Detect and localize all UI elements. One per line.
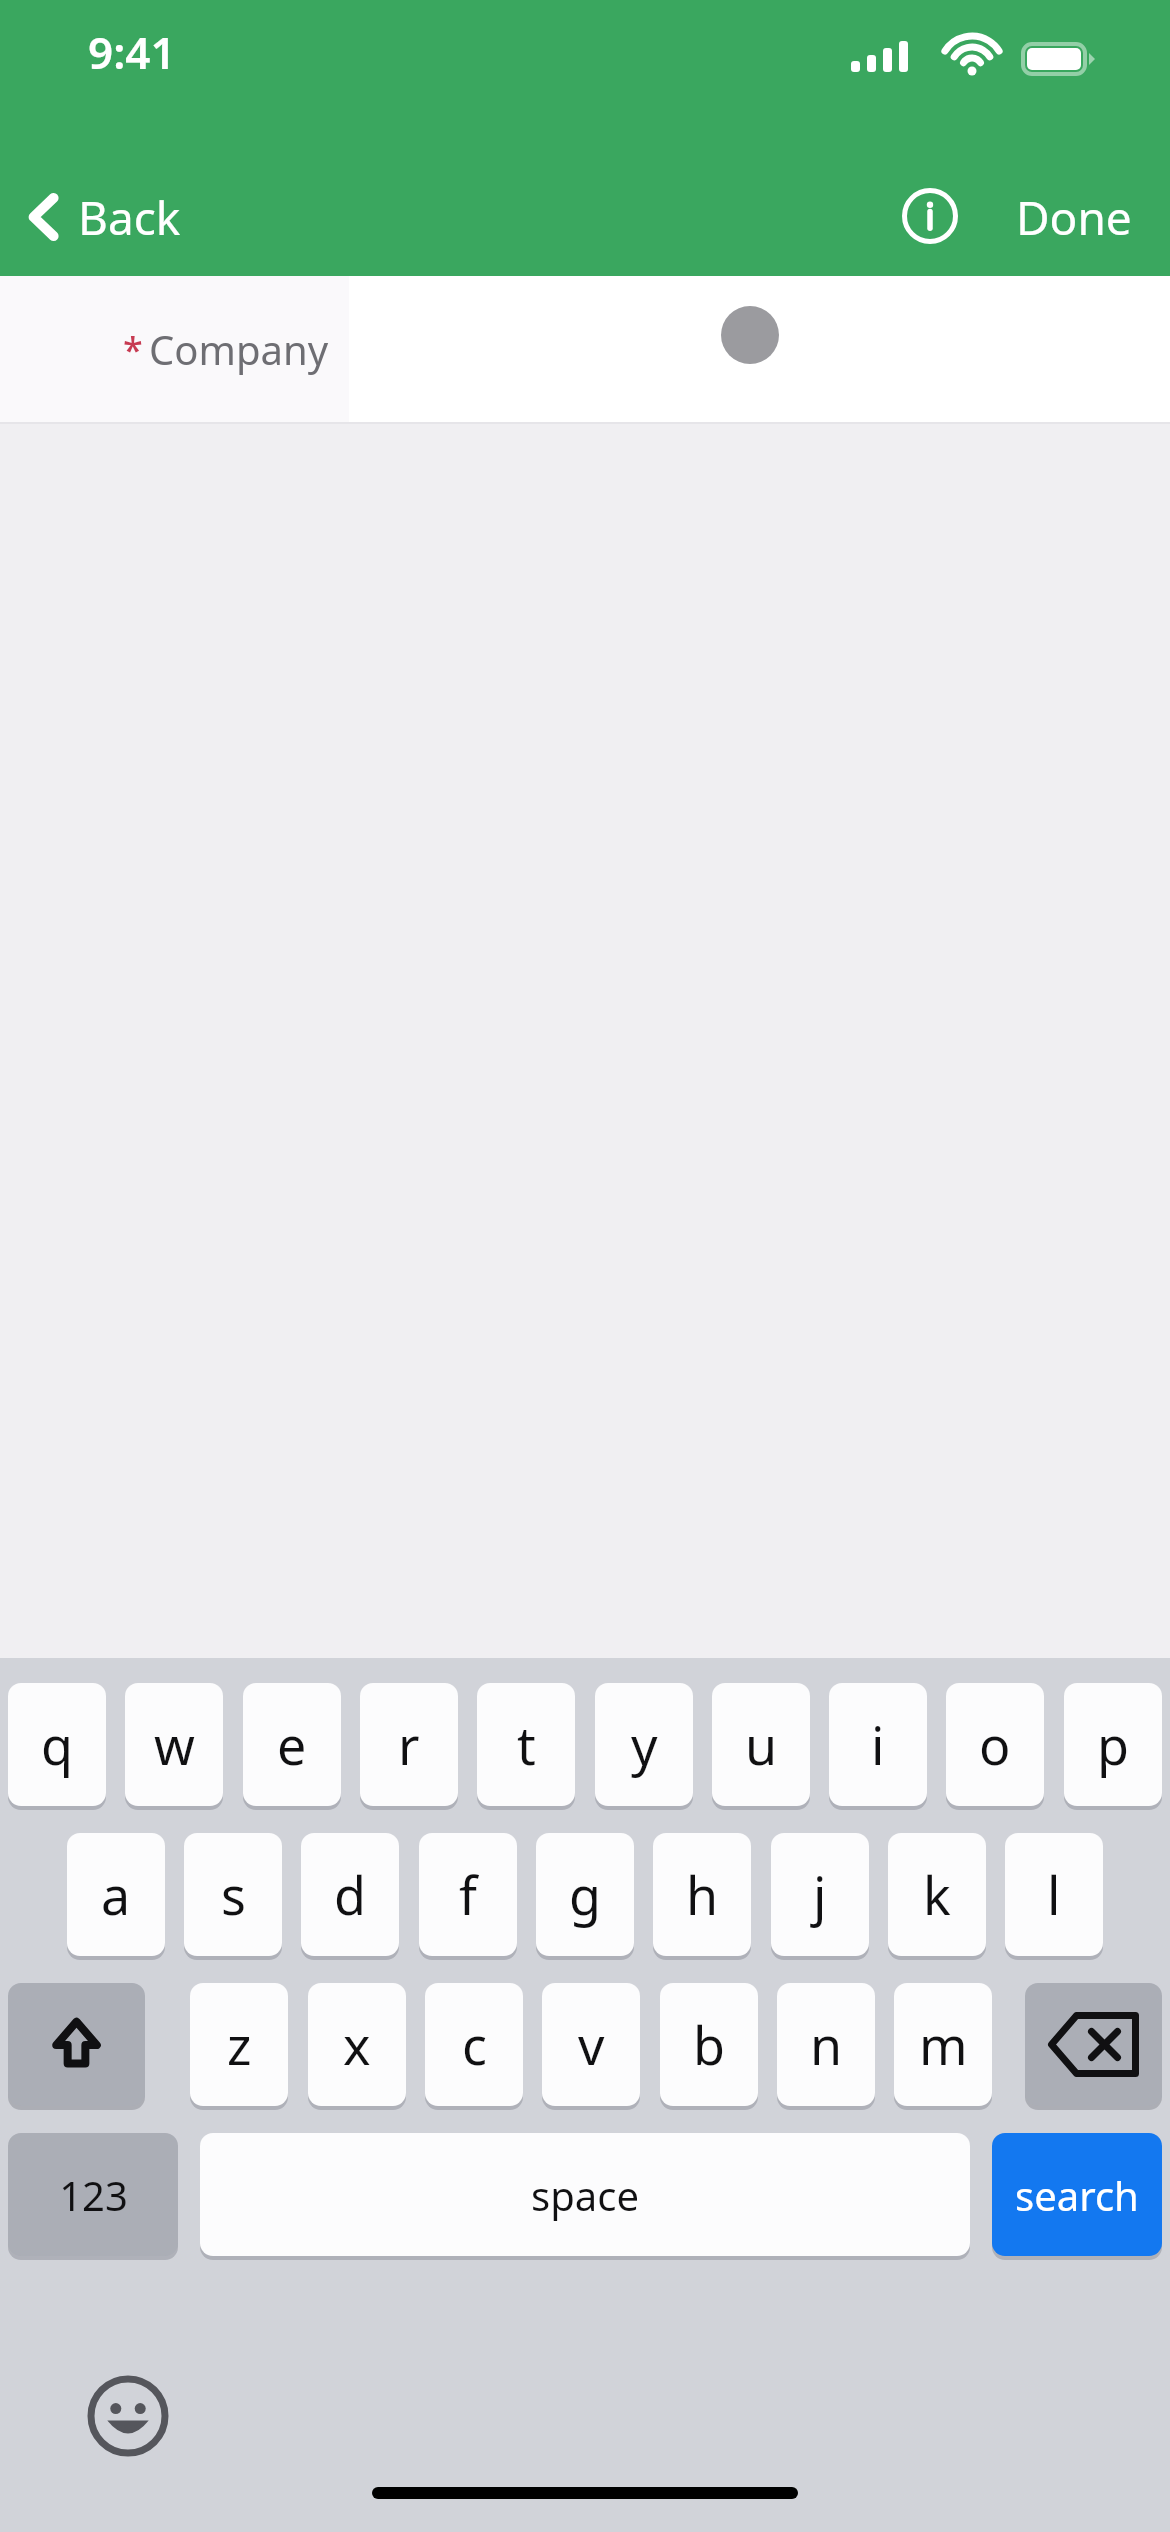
staticText: p xyxy=(1097,1709,1129,1780)
button[interactable]: Backspace xyxy=(1025,1983,1162,2106)
staticText: m xyxy=(919,2009,968,2080)
staticText: o xyxy=(979,1709,1011,1780)
button[interactable]: f xyxy=(419,1833,517,1956)
staticText: Done xyxy=(1016,186,1132,249)
staticText: a xyxy=(101,1859,131,1930)
button[interactable]: m xyxy=(894,1983,992,2106)
staticText: search xyxy=(1015,2168,1139,2222)
staticText: 123 xyxy=(59,2168,128,2222)
staticText: c xyxy=(462,2009,487,2080)
staticText: l xyxy=(1047,1859,1061,1930)
button[interactable]: k xyxy=(888,1833,986,1956)
button[interactable]: a xyxy=(67,1833,165,1956)
staticText: s xyxy=(221,1859,246,1930)
button[interactable]: w xyxy=(125,1683,223,1806)
button[interactable]: Done xyxy=(1000,162,1148,272)
staticText: y xyxy=(631,1709,658,1780)
button[interactable]: y xyxy=(595,1683,693,1806)
staticText: q xyxy=(41,1709,73,1780)
staticText: * xyxy=(123,325,143,374)
button[interactable]: search xyxy=(992,2133,1162,2256)
button[interactable]: u xyxy=(712,1683,810,1806)
button[interactable]: d xyxy=(301,1833,399,1956)
button[interactable]: s xyxy=(184,1833,282,1956)
staticText: x xyxy=(343,2009,371,2080)
button[interactable]: p xyxy=(1064,1683,1162,1806)
staticText: space xyxy=(531,2168,639,2222)
button[interactable]: z xyxy=(190,1983,288,2106)
button[interactable]: Emoji keyboard xyxy=(78,2366,178,2466)
button[interactable]: l xyxy=(1005,1833,1103,1956)
button[interactable]: t xyxy=(477,1683,575,1806)
button[interactable]: space xyxy=(200,2133,970,2256)
button[interactable]: Information xyxy=(880,166,980,266)
staticText: g xyxy=(569,1859,601,1930)
staticText: i xyxy=(871,1709,885,1780)
button[interactable]: j xyxy=(771,1833,869,1956)
staticText: Back xyxy=(78,186,181,249)
staticText: h xyxy=(686,1859,719,1930)
button[interactable]: g xyxy=(536,1833,634,1956)
staticText: Company xyxy=(149,322,329,376)
staticText: e xyxy=(277,1709,307,1780)
button[interactable]: o xyxy=(946,1683,1044,1806)
button[interactable]: h xyxy=(653,1833,751,1956)
button[interactable]: q xyxy=(8,1683,106,1806)
staticText: 9:41 xyxy=(88,22,176,82)
staticText: d xyxy=(334,1859,366,1930)
staticText: w xyxy=(154,1709,195,1780)
button[interactable]: v xyxy=(542,1983,640,2106)
staticText: z xyxy=(227,2009,252,2080)
button[interactable]: Shift xyxy=(8,1983,145,2106)
staticText: f xyxy=(459,1859,477,1930)
button[interactable]: n xyxy=(777,1983,875,2106)
button[interactable]: r xyxy=(360,1683,458,1806)
staticText: r xyxy=(398,1709,420,1780)
staticText: v xyxy=(578,2009,605,2080)
button[interactable]: b xyxy=(660,1983,758,2106)
button[interactable]: 123 xyxy=(8,2133,178,2256)
button[interactable]: e xyxy=(243,1683,341,1806)
button[interactable]: * xyxy=(0,276,1170,422)
staticText: n xyxy=(810,2009,843,2080)
button[interactable]: i xyxy=(829,1683,927,1806)
staticText: b xyxy=(693,2009,725,2080)
button[interactable]: c xyxy=(425,1983,523,2106)
staticText: u xyxy=(745,1709,778,1780)
staticText: j xyxy=(813,1859,827,1930)
button[interactable]: x xyxy=(308,1983,406,2106)
staticText: t xyxy=(517,1709,536,1780)
staticText: k xyxy=(923,1859,951,1930)
button[interactable]: Back xyxy=(12,162,203,272)
